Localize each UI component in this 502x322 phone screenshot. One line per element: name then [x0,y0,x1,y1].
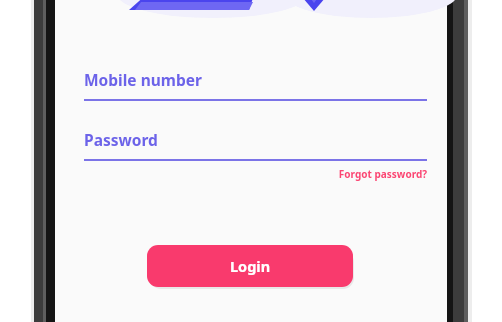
staticText: Forgot password? [313,167,427,185]
button[interactable]: Login [147,245,353,287]
button[interactable]: Password [84,124,427,162]
button[interactable]: Mobile number [84,64,427,102]
staticText: Mobile number [84,69,202,90]
button[interactable]: Forgot password? [313,167,427,185]
staticText: Password [84,129,158,150]
staticText: Login [230,256,271,276]
